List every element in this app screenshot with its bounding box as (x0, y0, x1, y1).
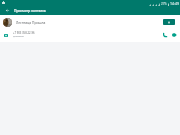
staticText: +7 903 358-22-96 (13, 31, 35, 35)
staticText: Лестница Пришла (16, 20, 46, 24)
staticText: Домашний (13, 35, 24, 38)
button[interactable]: Лестница Пришла (0, 15, 180, 29)
button[interactable]: Call (161, 31, 169, 39)
button[interactable]: Message (170, 31, 178, 39)
staticText: 14:49 (170, 1, 179, 6)
button[interactable]: Add to favourites (163, 19, 175, 25)
button[interactable]: +7 903 358-22-96 (0, 29, 180, 42)
staticText: 27% (161, 2, 167, 6)
button[interactable]: Back (3, 6, 11, 14)
staticText: Просмотр контакта (14, 8, 46, 12)
